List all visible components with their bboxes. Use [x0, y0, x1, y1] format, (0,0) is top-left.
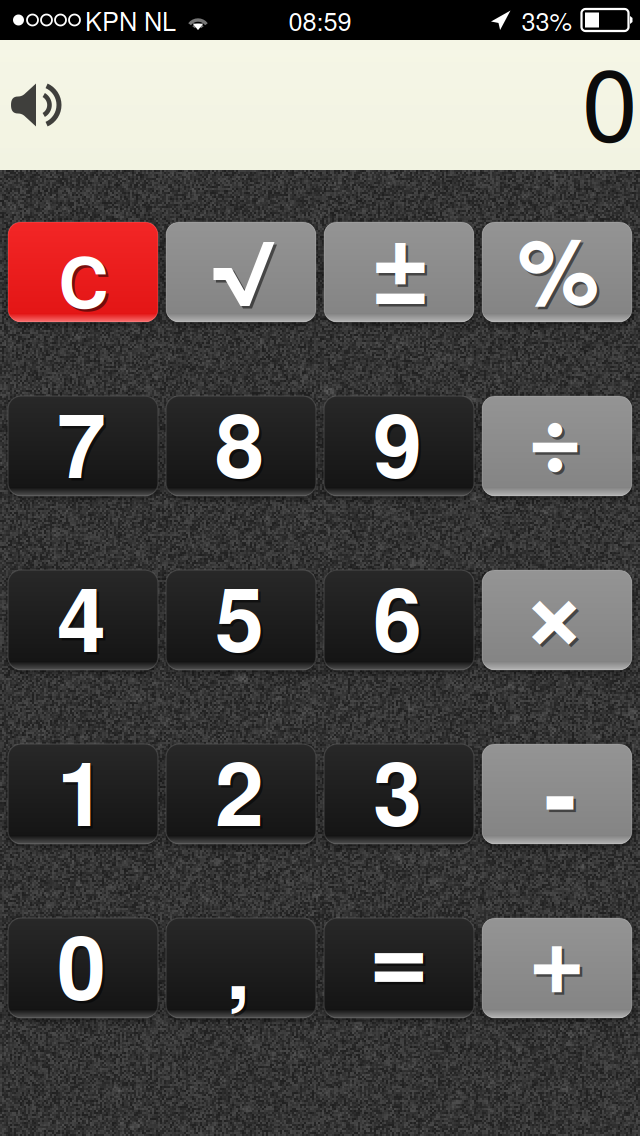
staticText: KPN NL: [85, 2, 176, 38]
button[interactable]: Sound: [0, 40, 78, 170]
staticText: 8: [215, 379, 264, 505]
staticText: 9: [375, 381, 424, 507]
button[interactable]: 0: [8, 918, 158, 1018]
staticText: -: [546, 722, 579, 863]
button[interactable]: ,: [166, 918, 316, 1018]
staticText: %: [520, 204, 602, 335]
button[interactable]: =: [324, 918, 474, 1018]
button[interactable]: 3: [324, 744, 474, 844]
staticText: C: [61, 233, 111, 332]
button[interactable]: 6: [324, 570, 474, 670]
staticText: -: [544, 719, 577, 861]
button[interactable]: 2: [166, 744, 316, 844]
staticText: ,: [226, 900, 250, 1026]
staticText: 9: [373, 379, 422, 505]
staticText: 7: [59, 381, 108, 507]
button[interactable]: [166, 222, 316, 322]
staticText: 7: [57, 379, 106, 505]
staticText: 0: [57, 901, 106, 1027]
staticText: 1: [57, 727, 106, 853]
staticText: =: [371, 879, 432, 1028]
staticText: 4: [59, 555, 108, 681]
staticText: 0: [582, 26, 638, 170]
staticText: 4: [57, 553, 106, 679]
staticText: 33%: [521, 2, 572, 38]
button[interactable]: ±: [324, 222, 474, 322]
staticText: 3: [373, 727, 422, 853]
button[interactable]: 8: [166, 396, 316, 496]
button[interactable]: -: [482, 744, 632, 844]
staticText: 5: [215, 553, 264, 679]
staticText: 2: [217, 729, 266, 855]
staticText: +: [528, 883, 586, 1025]
staticText: %: [517, 201, 599, 333]
staticText: ±: [370, 187, 431, 336]
staticText: =: [368, 876, 429, 1025]
staticText: ×: [524, 527, 589, 688]
staticText: ×: [521, 525, 586, 685]
button[interactable]: 4: [8, 570, 158, 670]
staticText: 5: [217, 555, 266, 681]
staticText: +: [530, 886, 588, 1027]
staticText: ÷: [527, 363, 583, 501]
button[interactable]: +: [482, 918, 632, 1018]
staticText: 3: [375, 729, 424, 855]
button[interactable]: 1: [8, 744, 158, 844]
staticText: ,: [228, 902, 252, 1028]
staticText: 8: [217, 381, 266, 507]
staticText: 6: [373, 553, 422, 679]
staticText: ÷: [529, 366, 585, 503]
staticText: ±: [372, 189, 433, 338]
button[interactable]: ×: [482, 570, 632, 670]
staticText: 1: [59, 729, 108, 855]
staticText: C: [58, 230, 108, 330]
staticText: 2: [215, 727, 264, 853]
button[interactable]: 5: [166, 570, 316, 670]
staticText: 08:59: [288, 2, 351, 38]
button[interactable]: %: [482, 222, 632, 322]
button[interactable]: 7: [8, 396, 158, 496]
staticText: 6: [375, 555, 424, 681]
staticText: 0: [59, 903, 108, 1029]
button[interactable]: 9: [324, 396, 474, 496]
button[interactable]: ÷: [482, 396, 632, 496]
button[interactable]: C: [8, 222, 158, 322]
